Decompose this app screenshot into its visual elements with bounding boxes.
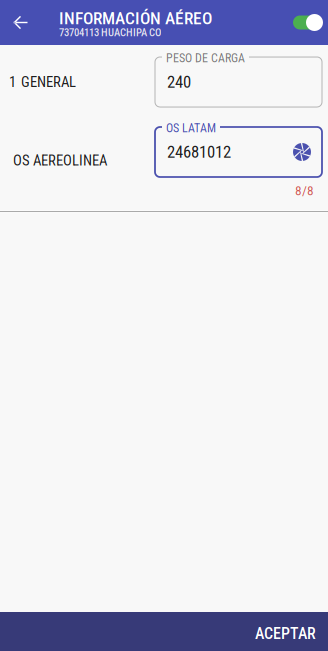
staticText: 240 — [167, 72, 191, 92]
staticText: OS LATAM — [166, 121, 216, 135]
staticText: 8/8 — [295, 183, 314, 199]
staticText: INFORMACIÓN AÉREO — [59, 8, 212, 28]
staticText: 24681012 — [167, 142, 231, 162]
staticText: GENERAL — [21, 73, 76, 91]
staticText: PESO DE CARGA — [166, 51, 245, 65]
staticText: OS AEREOLINEA — [13, 152, 107, 169]
staticText: ACEPTAR — [255, 624, 316, 643]
button[interactable]: Toggle air information — [293, 0, 328, 45]
button[interactable]: ACEPTAR — [0, 612, 328, 651]
button[interactable]: Back — [0, 0, 45, 45]
staticText: 1 — [9, 73, 16, 91]
staticText: 73704113 HUACHIPA CO — [59, 26, 161, 39]
